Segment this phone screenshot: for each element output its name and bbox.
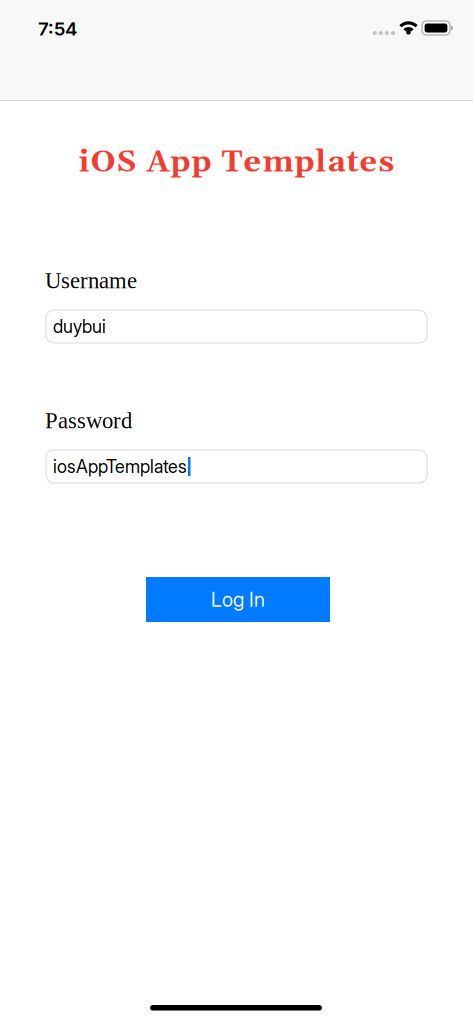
button[interactable]: duybui <box>46 310 427 343</box>
staticText: Password <box>45 408 132 433</box>
button[interactable]: Log In <box>146 577 330 622</box>
staticText: iOS App Templates <box>78 143 394 182</box>
staticText: Username <box>45 268 137 293</box>
button[interactable]: iosAppTemplates <box>46 450 427 483</box>
staticText: 7:54 <box>38 17 77 40</box>
staticText: duybui <box>53 316 106 337</box>
staticText: Log In <box>211 587 265 612</box>
staticText: iosAppTemplates <box>53 456 187 477</box>
